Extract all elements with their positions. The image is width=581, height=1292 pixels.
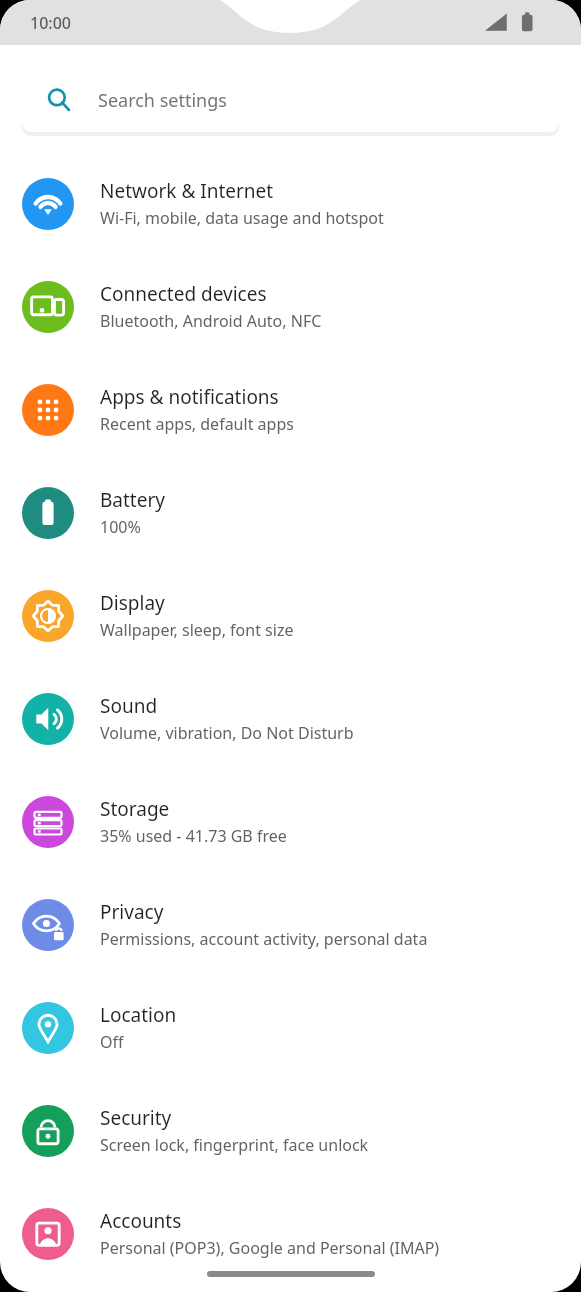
button[interactable]: Storage (0, 770, 581, 873)
staticText: 100% (100, 516, 141, 538)
button[interactable]: Location (0, 976, 581, 1079)
staticText: Security (100, 1105, 172, 1131)
staticText: Accounts (100, 1208, 182, 1234)
staticText: Wi-Fi, mobile, data usage and hotspot (100, 207, 384, 229)
staticText: Connected devices (100, 281, 267, 307)
staticText: Battery (100, 487, 165, 513)
staticText: 10:00 (30, 12, 71, 34)
staticText: Personal (POP3), Google and Personal (IM… (100, 1237, 440, 1259)
staticText: Recent apps, default apps (100, 413, 294, 435)
staticText: Volume, vibration, Do Not Disturb (100, 722, 354, 744)
button[interactable]: Apps & notifications (0, 358, 581, 461)
staticText: Screen lock, fingerprint, face unlock (100, 1134, 369, 1156)
staticText: Sound (100, 693, 158, 719)
button[interactable]: Connected devices (0, 255, 581, 358)
staticText: Location (100, 1002, 177, 1028)
button[interactable]: Sound (0, 667, 581, 770)
button[interactable]: Network & Internet (0, 152, 581, 255)
staticText: Permissions, account activity, personal … (100, 928, 428, 950)
staticText: Search settings (98, 88, 227, 113)
staticText: Wallpaper, sleep, font size (100, 619, 294, 641)
button[interactable]: Display (0, 564, 581, 667)
staticText: Bluetooth, Android Auto, NFC (100, 310, 322, 332)
staticText: Off (100, 1031, 124, 1053)
button[interactable]: Accounts (0, 1182, 581, 1285)
staticText: Network & Internet (100, 178, 274, 204)
staticText: Privacy (100, 899, 164, 925)
button[interactable]: Privacy (0, 873, 581, 976)
button[interactable]: Security (0, 1079, 581, 1182)
button[interactable]: Search settings (22, 68, 559, 132)
staticText: Storage (100, 796, 170, 822)
staticText: Apps & notifications (100, 384, 279, 410)
staticText: 35% used - 41.73 GB free (100, 825, 287, 847)
button[interactable]: Battery (0, 461, 581, 564)
staticText: Display (100, 590, 165, 616)
